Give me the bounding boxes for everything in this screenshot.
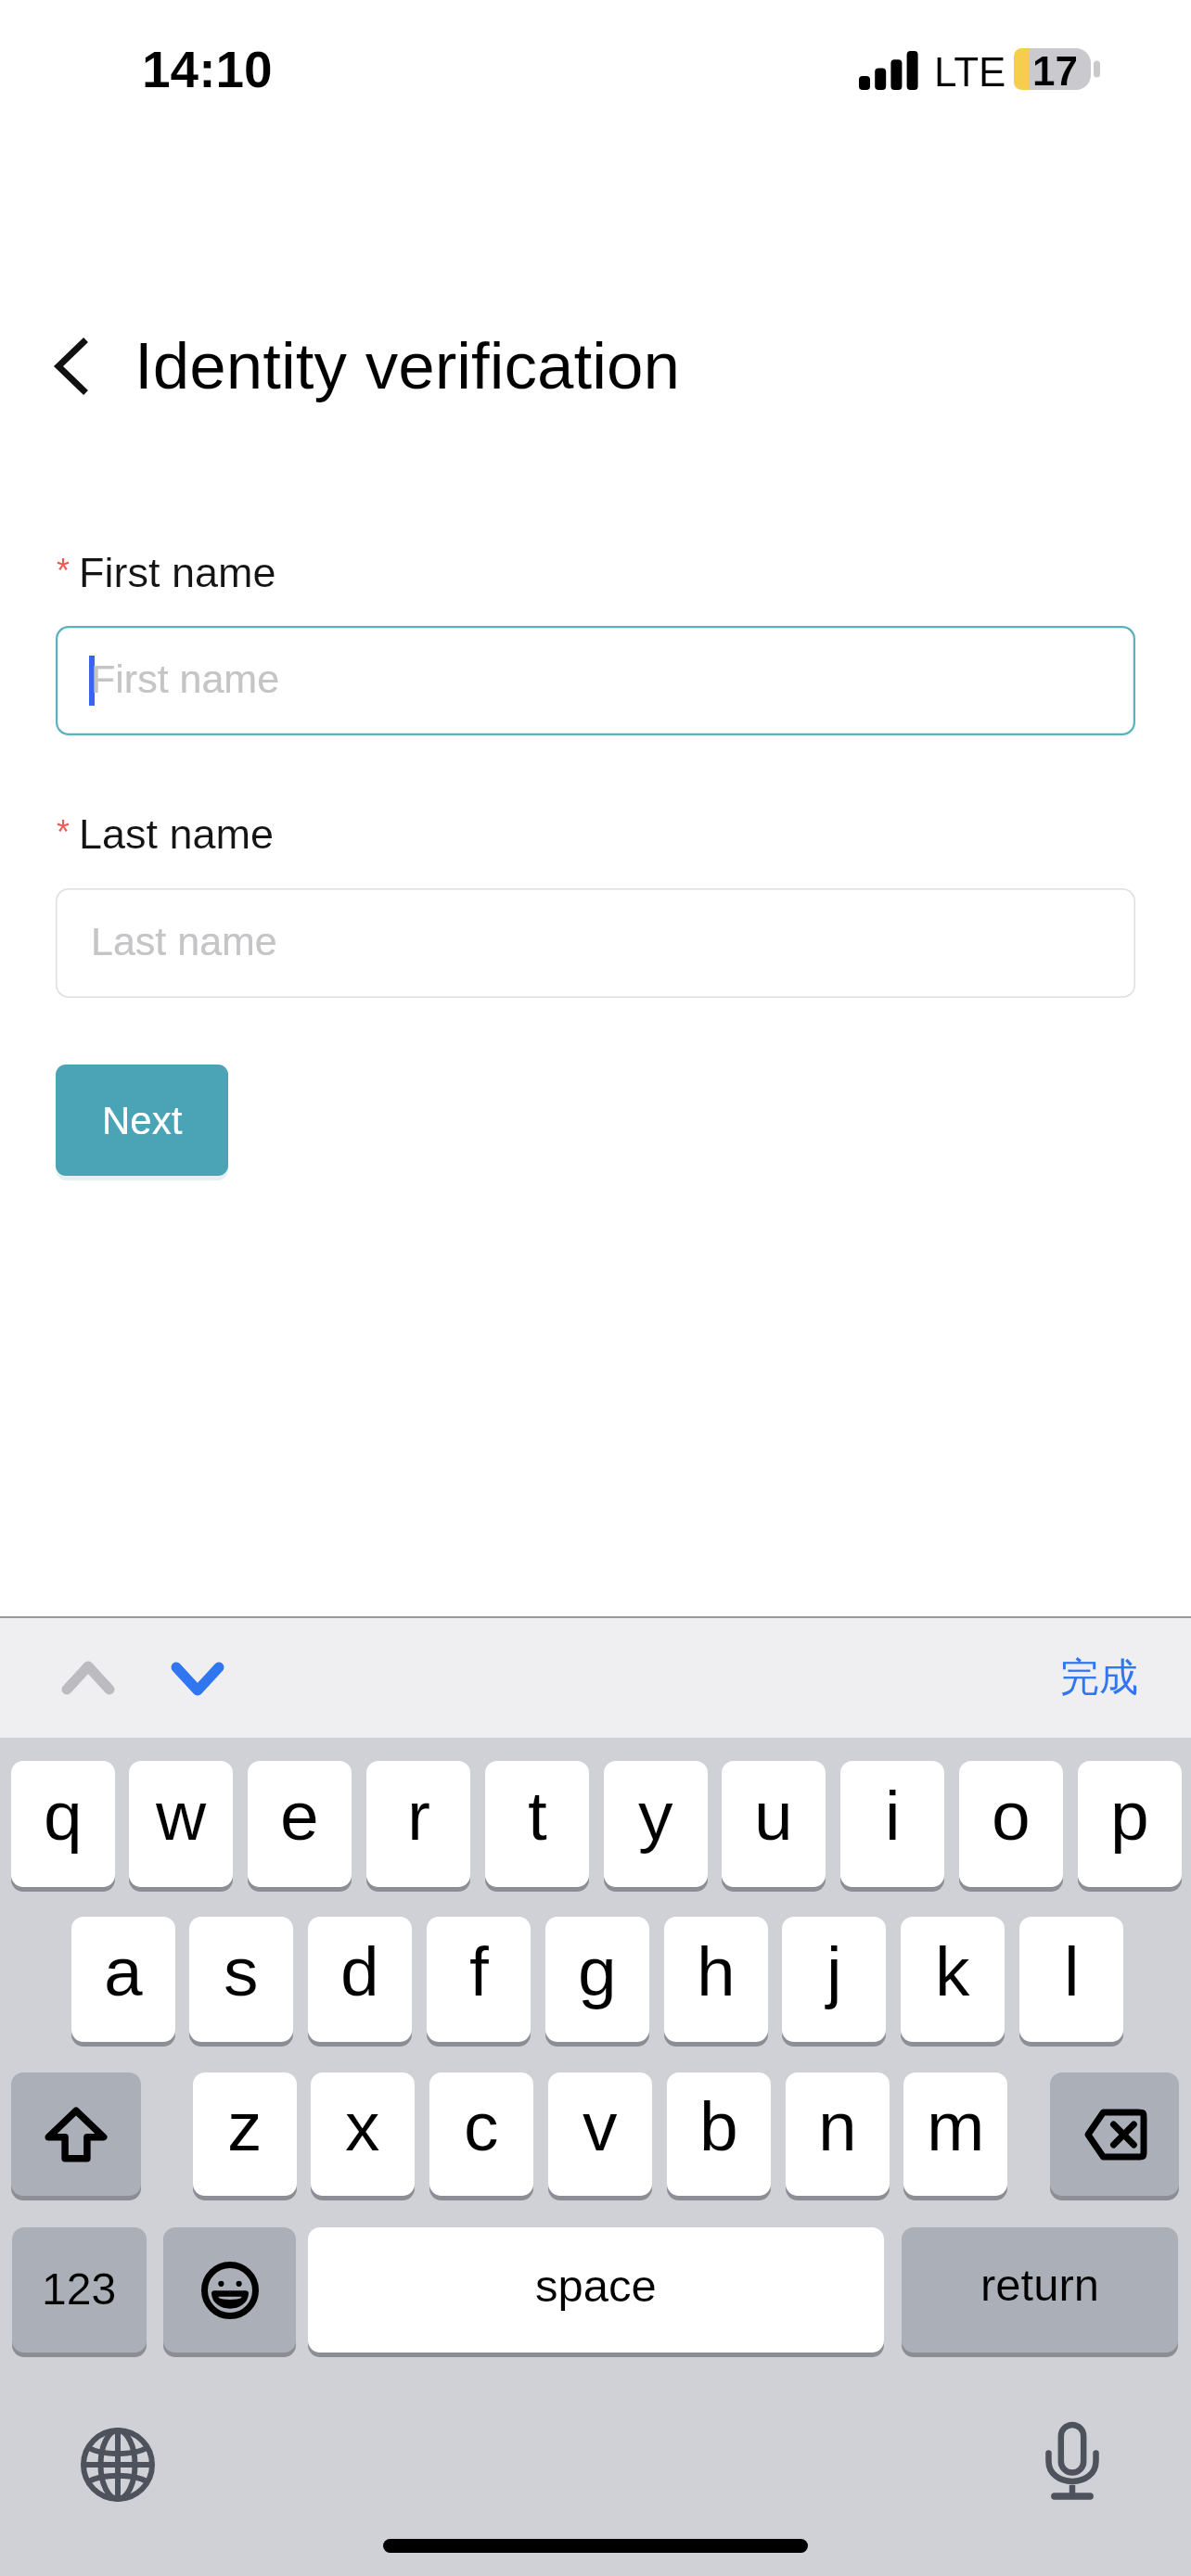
staticText: return <box>980 2260 1100 2311</box>
button[interactable]: Change keyboard <box>71 2418 164 2511</box>
button[interactable]: Next field <box>156 1641 239 1715</box>
button[interactable]: 完成 <box>1039 1644 1159 1711</box>
button[interactable]: b <box>667 2072 771 2196</box>
button[interactable]: Last name <box>56 888 1135 998</box>
staticText: * <box>57 552 70 589</box>
staticText: e <box>280 1777 319 1855</box>
staticText: First name <box>91 657 280 701</box>
button[interactable]: Back <box>43 338 98 394</box>
button[interactable]: a <box>71 1917 175 2042</box>
staticText: k <box>935 1932 970 2010</box>
staticText: 17 <box>1032 48 1078 90</box>
staticText: c <box>464 2087 499 2165</box>
staticText: p <box>1110 1777 1149 1855</box>
staticText: t <box>528 1777 547 1855</box>
staticText: 123 <box>42 2264 117 2315</box>
button[interactable]: c <box>429 2072 533 2196</box>
staticText: u <box>754 1777 793 1855</box>
button[interactable]: h <box>664 1917 768 2042</box>
button[interactable]: Shift <box>11 2072 141 2196</box>
button[interactable]: e <box>248 1761 352 1887</box>
staticText: j <box>826 1932 842 2010</box>
staticText: m <box>927 2087 985 2165</box>
button[interactable]: 123 <box>12 2227 147 2353</box>
button[interactable]: l <box>1019 1917 1123 2042</box>
button[interactable]: g <box>545 1917 649 2042</box>
button[interactable]: v <box>548 2072 652 2196</box>
button[interactable]: p <box>1078 1761 1182 1887</box>
button[interactable]: f <box>427 1917 531 2042</box>
staticText: h <box>697 1932 736 2010</box>
staticText: q <box>44 1777 83 1855</box>
staticText: a <box>104 1932 143 2010</box>
button[interactable]: Next <box>56 1065 228 1176</box>
staticText: s <box>224 1932 259 2010</box>
button[interactable]: j <box>782 1917 886 2042</box>
staticText: f <box>469 1932 489 2010</box>
staticText: LTE <box>934 49 1006 95</box>
staticText: Identity verification <box>134 329 681 402</box>
staticText: z <box>227 2087 263 2165</box>
staticText: o <box>992 1777 1031 1855</box>
button[interactable]: q <box>11 1761 115 1887</box>
staticText: g <box>578 1932 617 2010</box>
button[interactable]: x <box>311 2072 415 2196</box>
staticText: Next <box>102 1099 183 1142</box>
staticText: Last name <box>91 919 277 963</box>
staticText: d <box>340 1932 379 2010</box>
staticText: x <box>345 2087 380 2165</box>
button[interactable]: n <box>786 2072 890 2196</box>
staticText: v <box>583 2087 618 2165</box>
button[interactable]: z <box>193 2072 297 2196</box>
button[interactable]: Emoji <box>163 2227 296 2353</box>
staticText: i <box>885 1777 901 1855</box>
button[interactable]: r <box>366 1761 470 1887</box>
staticText: w <box>156 1777 207 1855</box>
button[interactable]: y <box>604 1761 708 1887</box>
staticText: 14:10 <box>142 41 273 97</box>
button[interactable]: m <box>903 2072 1007 2196</box>
button[interactable]: First name <box>56 626 1135 735</box>
staticText: y <box>638 1777 673 1855</box>
button[interactable]: u <box>722 1761 826 1887</box>
staticText: l <box>1064 1932 1080 2010</box>
button[interactable]: i <box>840 1761 944 1887</box>
staticText: n <box>818 2087 857 2165</box>
button[interactable]: space <box>308 2227 884 2353</box>
staticText: r <box>407 1777 430 1855</box>
button[interactable]: Backspace <box>1050 2072 1179 2196</box>
button[interactable]: d <box>308 1917 412 2042</box>
button[interactable]: return <box>902 2227 1178 2353</box>
staticText: b <box>699 2087 738 2165</box>
staticText: First name <box>79 549 276 595</box>
button[interactable]: Dictation <box>1026 2415 1119 2507</box>
staticText: * <box>57 813 70 850</box>
staticText: 完成 <box>1060 1653 1138 1702</box>
button[interactable]: s <box>189 1917 293 2042</box>
button[interactable]: w <box>129 1761 233 1887</box>
button[interactable]: t <box>485 1761 589 1887</box>
staticText: Last name <box>79 810 275 857</box>
button[interactable]: k <box>901 1917 1005 2042</box>
staticText: space <box>535 2261 657 2312</box>
button[interactable]: o <box>959 1761 1063 1887</box>
button[interactable]: Previous field <box>46 1640 130 1715</box>
